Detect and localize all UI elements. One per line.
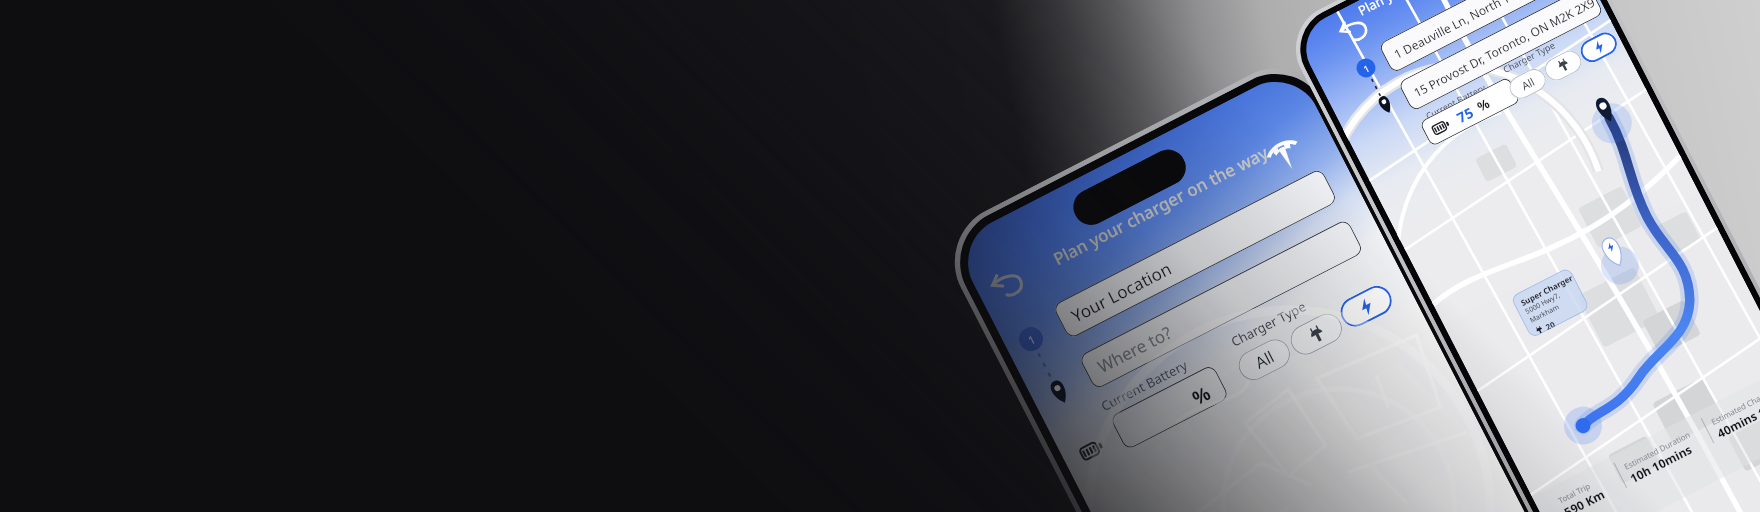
button[interactable]: All: [1505, 65, 1550, 103]
button[interactable]: Where to?: [1078, 218, 1364, 390]
staticText: 590 Km: [1561, 485, 1607, 512]
staticText: %: [1474, 94, 1493, 116]
staticText: Super Charger: [1519, 272, 1575, 308]
button[interactable]: Plug charger: [1285, 308, 1347, 360]
staticText: 1: [1361, 61, 1372, 75]
staticText: Where to?: [1093, 321, 1176, 378]
staticText: All: [1519, 74, 1537, 93]
button[interactable]: Back: [981, 259, 1032, 310]
button[interactable]: Plug charger: [1541, 47, 1585, 84]
staticText: Current Battery: [1098, 356, 1191, 415]
staticText: 5000 Hwy7, Markham: [1524, 281, 1585, 326]
staticText: 15 Provost Dr, Toronto, ON M2K 2X9: [1411, 0, 1598, 100]
staticText: 1: [1025, 331, 1038, 347]
button[interactable]: 75: [1419, 76, 1521, 147]
staticText: 75: [1453, 102, 1477, 127]
staticText: 1 Deauville Ln, North York,: [1391, 0, 1532, 62]
button[interactable]: All: [1233, 334, 1295, 385]
staticText: 20: [1543, 318, 1556, 330]
staticText: Estimated Duration: [1622, 429, 1692, 472]
staticText: All: [1251, 345, 1278, 374]
staticText: 10h 10mins: [1627, 441, 1695, 486]
button[interactable]: [1109, 364, 1230, 451]
button[interactable]: Super Charger: [1510, 267, 1590, 339]
button[interactable]: Back: [1329, 6, 1377, 55]
button[interactable]: Your Location: [1052, 168, 1338, 339]
staticText: Charger Type: [1501, 38, 1557, 75]
staticText: Estimated Charging: [1709, 383, 1760, 427]
button[interactable]: Fast charger: [1577, 28, 1621, 66]
button[interactable]: 1 Deauville Ln, North York,: [1378, 0, 1584, 74]
button[interactable]: 15 Provost Dr, Toronto, ON M2K 2X9: [1398, 0, 1604, 112]
staticText: Charger Type: [1228, 297, 1309, 351]
staticText: Total Trip: [1556, 480, 1592, 506]
staticText: %: [1188, 380, 1216, 411]
staticText: Plan your charger on the way: [1049, 141, 1272, 270]
button[interactable]: Fast charger: [1335, 281, 1397, 332]
staticText: Plan your charger on the way: [1355, 0, 1522, 19]
staticText: Your Location: [1067, 257, 1176, 327]
staticText: Current Battery: [1423, 81, 1488, 122]
staticText: 40mins to 100%: [1714, 384, 1760, 441]
